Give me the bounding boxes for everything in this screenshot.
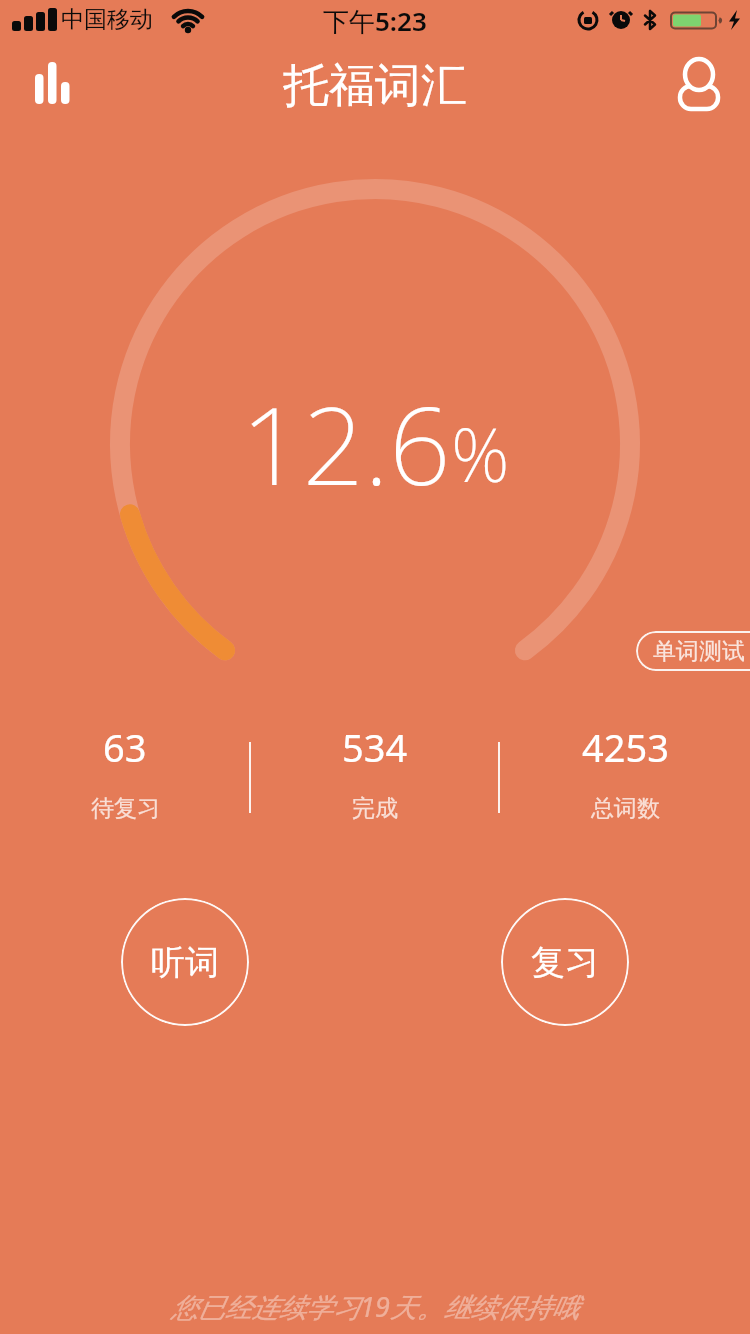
staticText: % <box>451 404 510 503</box>
staticText: 单词测试 <box>653 637 745 666</box>
button[interactable]: 4253 <box>500 721 750 823</box>
button[interactable] <box>672 50 726 114</box>
staticText: 下午5:23 <box>323 3 427 39</box>
staticText: 63 <box>103 721 147 773</box>
button[interactable]: 单词测试 <box>636 631 750 671</box>
button[interactable]: 534 <box>250 721 500 823</box>
staticText: 您已经连续学习19天。继续保持哦 <box>171 1288 579 1325</box>
staticText: 12.6 <box>241 370 451 517</box>
staticText: 复习 <box>531 941 599 984</box>
staticText: 完成 <box>352 794 398 823</box>
staticText: 4253 <box>582 721 669 773</box>
staticText: 总词数 <box>591 794 660 823</box>
button[interactable]: 听词 <box>121 898 249 1026</box>
button[interactable]: 63 <box>0 721 250 823</box>
staticText: 中国移动 <box>61 5 153 34</box>
button[interactable]: 复习 <box>501 898 629 1026</box>
staticText: 听词 <box>151 941 219 984</box>
staticText: 534 <box>342 721 408 773</box>
staticText: 托福词汇 <box>283 57 467 115</box>
button[interactable] <box>25 50 79 112</box>
staticText: 待复习 <box>91 794 160 823</box>
